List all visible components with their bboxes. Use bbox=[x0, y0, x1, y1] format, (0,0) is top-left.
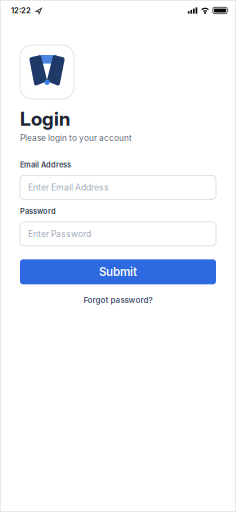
staticText: Login bbox=[20, 107, 70, 130]
staticText: 12:22 bbox=[11, 6, 31, 15]
staticText: Please login to your account bbox=[20, 133, 132, 143]
staticText: Submit bbox=[99, 265, 137, 279]
textField[interactable]: Enter Password bbox=[20, 222, 216, 246]
button[interactable]: Submit bbox=[20, 259, 216, 284]
staticText: Enter Password bbox=[28, 229, 91, 239]
textField[interactable]: Enter Email Address bbox=[20, 175, 216, 199]
staticText: Enter Email Address bbox=[28, 182, 109, 193]
staticText: Password bbox=[20, 207, 56, 216]
staticText: Forgot password? bbox=[83, 295, 152, 305]
button[interactable]: Forgot password? bbox=[83, 295, 152, 305]
staticText: Email Address bbox=[20, 160, 71, 169]
